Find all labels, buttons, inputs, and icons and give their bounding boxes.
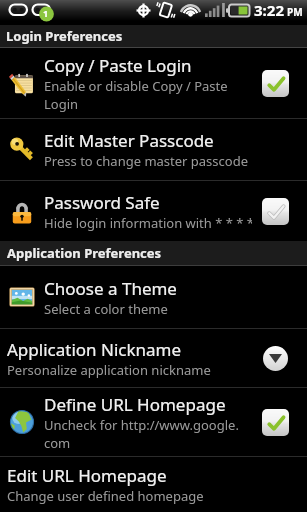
button[interactable]: Unchecked <box>262 198 289 225</box>
staticText: Password Safe <box>44 191 160 214</box>
staticText: Change user defined homepage <box>7 487 204 505</box>
staticText: Enable or disable Copy / Paste Login <box>44 77 228 113</box>
staticText: Personalize application nickname <box>7 361 211 379</box>
staticText: PM <box>287 5 303 19</box>
button[interactable]: Application Nickname <box>0 329 307 387</box>
staticText: Login Preferences <box>6 27 123 45</box>
staticText: Application Preferences <box>7 244 162 262</box>
button[interactable]: Checked <box>262 70 289 97</box>
button[interactable]: Edit Master Passcode <box>0 119 307 180</box>
staticText: Select a color theme <box>44 300 168 318</box>
button[interactable]: Define URL Homepage <box>0 388 307 456</box>
staticText: Define URL Homepage <box>44 393 226 416</box>
button[interactable]: Edit URL Homepage <box>0 457 307 512</box>
staticText: Application Nickname <box>7 338 182 361</box>
button[interactable]: Copy / Paste Login <box>0 48 307 118</box>
staticText: Choose a Theme <box>44 277 177 300</box>
staticText: 1 <box>43 7 49 19</box>
staticText: Edit Master Passcode <box>44 129 214 152</box>
staticText: Press to change master passcode <box>44 152 249 170</box>
button[interactable]: Expand <box>263 346 288 371</box>
staticText: Copy / Paste Login <box>44 54 192 77</box>
staticText: Edit URL Homepage <box>7 464 167 487</box>
button[interactable]: Checked <box>262 409 289 436</box>
staticText: Hide login information with * * * * <box>44 214 252 232</box>
staticText: Uncheck for http://www.google. com <box>44 416 239 452</box>
staticText: 3:22 <box>254 0 284 20</box>
button[interactable]: Password Safe <box>0 181 307 241</box>
button[interactable]: Choose a Theme <box>0 266 307 328</box>
